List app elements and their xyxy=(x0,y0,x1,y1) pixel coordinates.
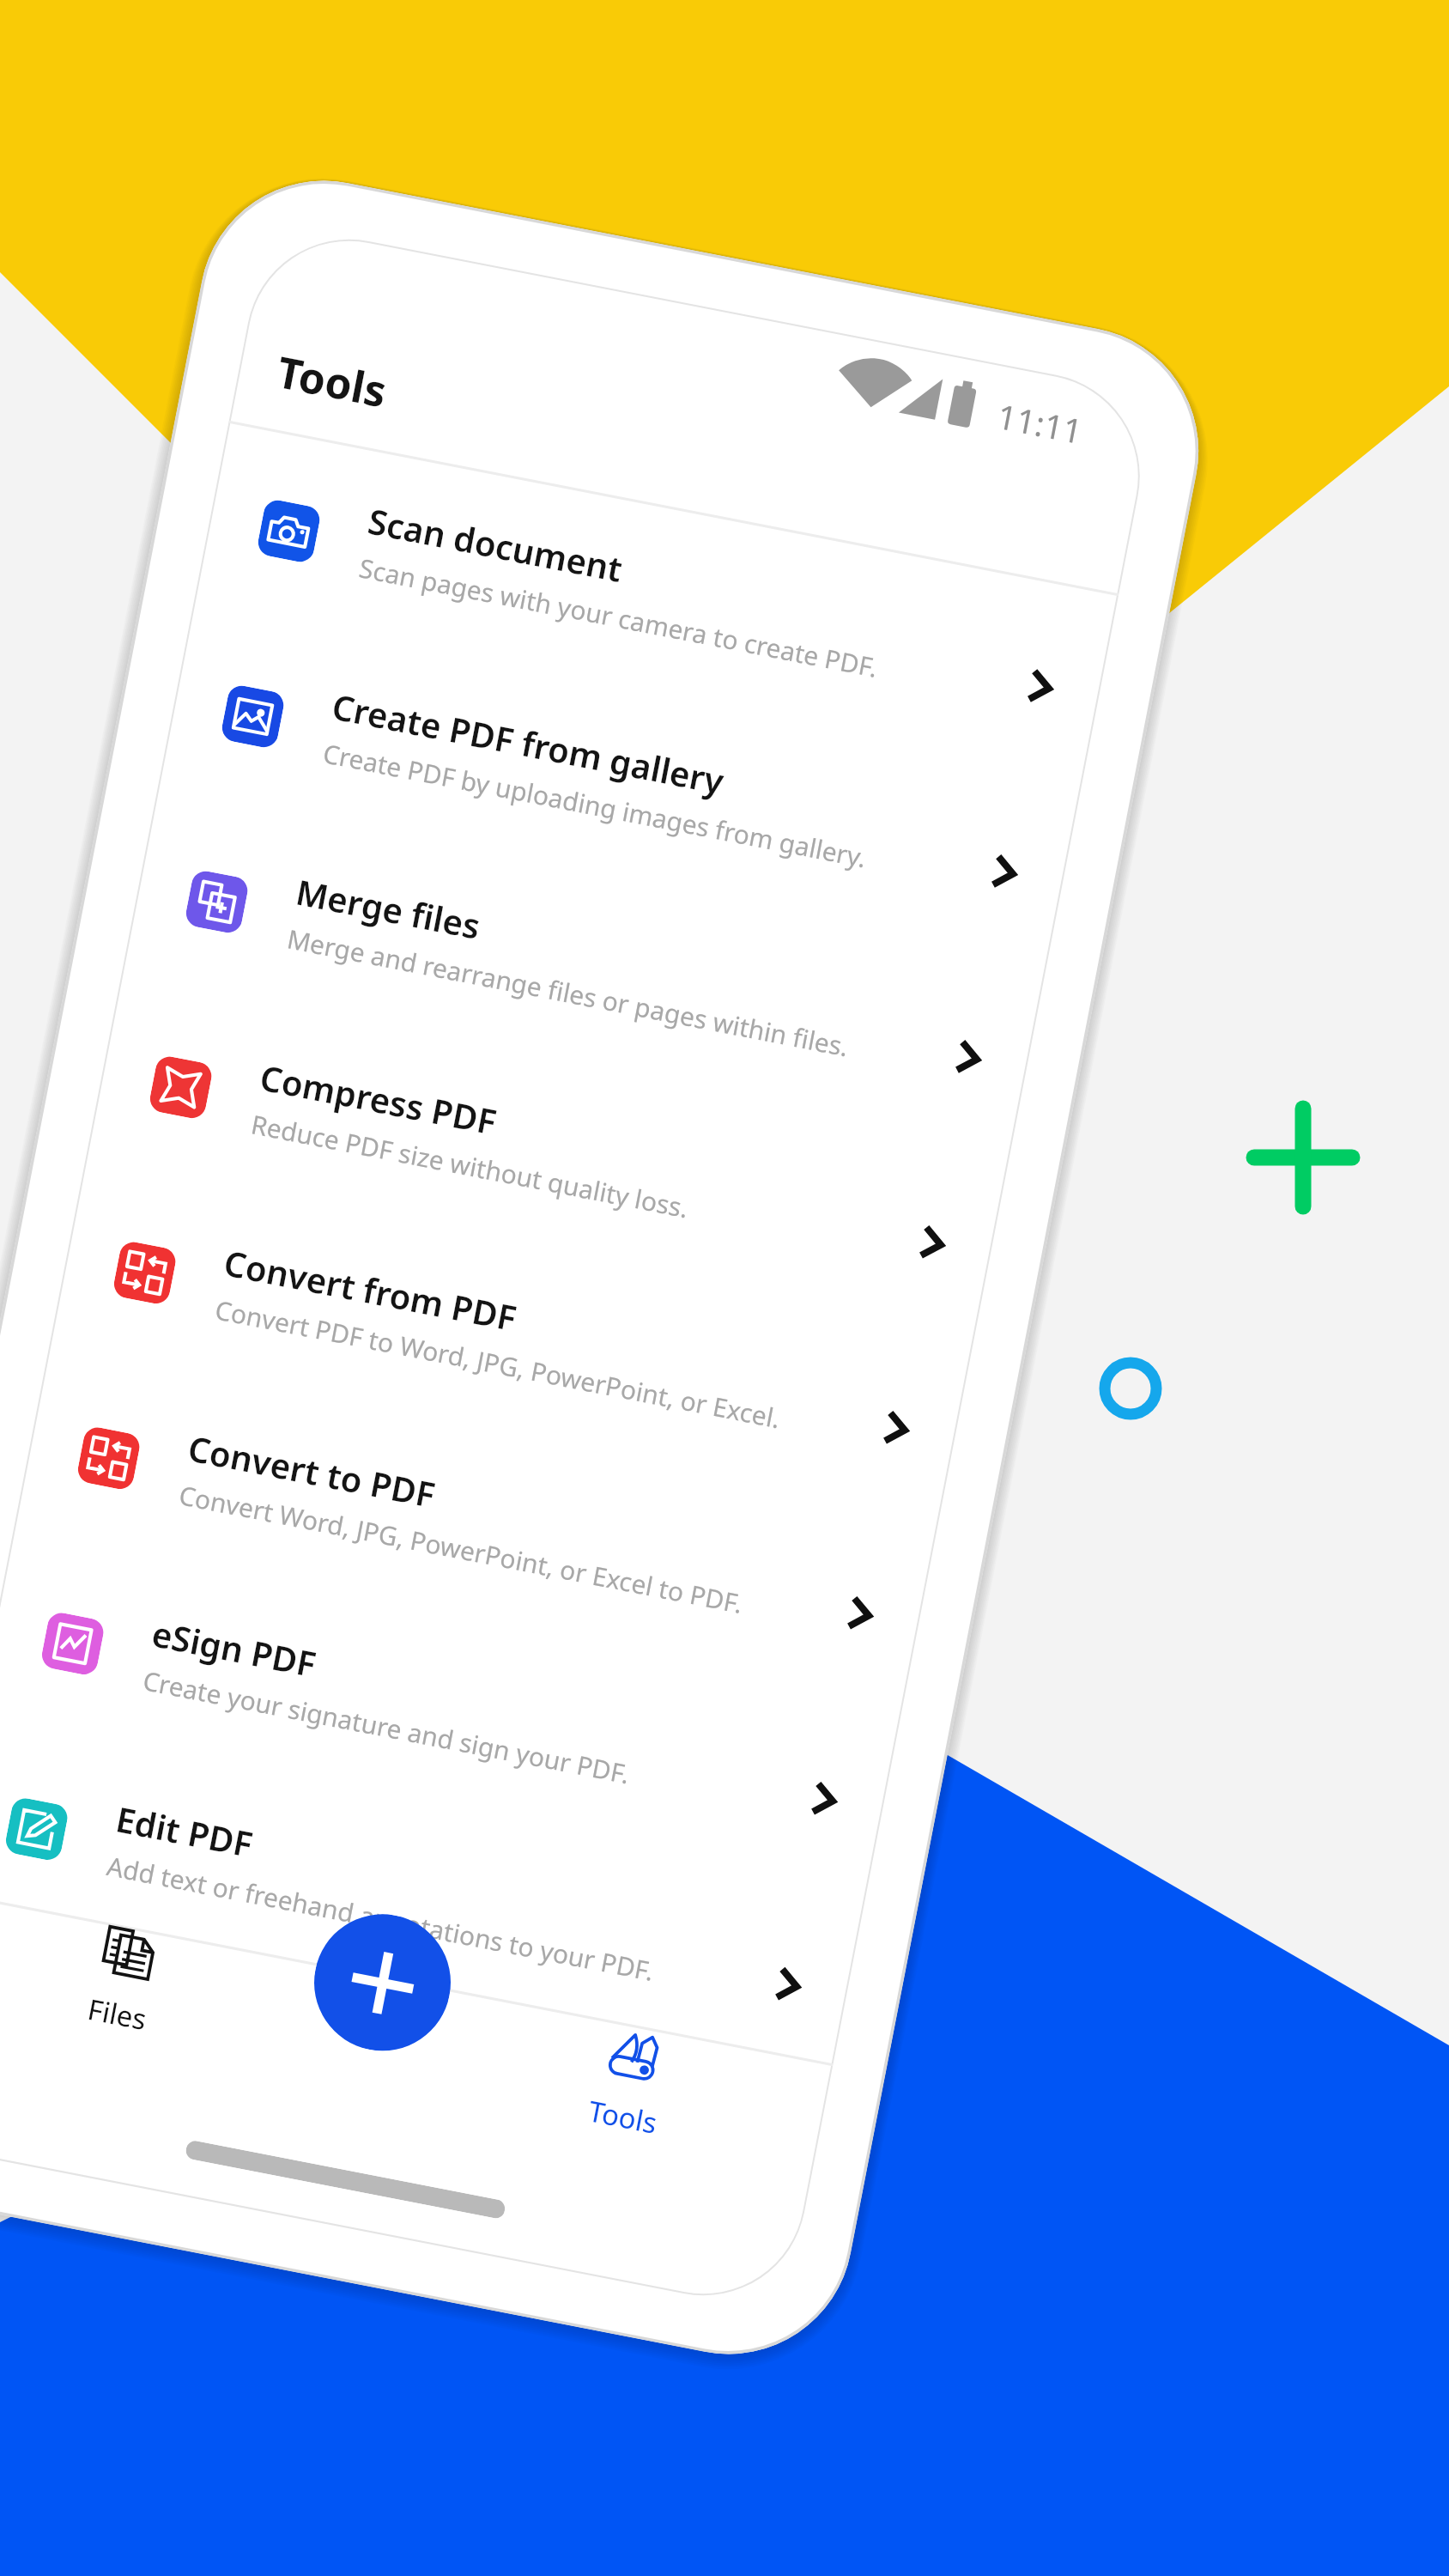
staticText: Create your signature and sign your PDF. xyxy=(140,1662,633,1792)
button[interactable]: Create xyxy=(302,1902,462,2063)
button[interactable]: Merge files xyxy=(120,794,1046,1153)
staticText: Merge and rearrange files or pages withi… xyxy=(284,921,852,1064)
button[interactable]: Scan document xyxy=(193,423,1118,782)
staticText: Create PDF from gallery xyxy=(329,682,728,804)
staticText: Edit PDF xyxy=(112,1795,257,1867)
staticText: Tools xyxy=(273,342,392,420)
staticText: Merge files xyxy=(292,868,484,949)
staticText: Compress PDF xyxy=(256,1053,500,1144)
staticText: Convert to PDF xyxy=(184,1424,439,1517)
staticText: eSign PDF xyxy=(148,1609,321,1687)
button[interactable]: Convert to PDF xyxy=(12,1350,938,1709)
button[interactable]: Edit PDF xyxy=(0,1721,866,2080)
staticText: Add text or freehand annotations to your… xyxy=(104,1848,657,1989)
staticText: Scan pages with your camera to create PD… xyxy=(356,550,881,685)
button[interactable]: eSign PDF xyxy=(0,1536,902,1894)
staticText: Convert PDF to Word, JPG, PowerPoint, or… xyxy=(212,1292,783,1436)
staticText: Files xyxy=(85,1989,150,2039)
button[interactable]: Create PDF from gallery xyxy=(156,609,1082,967)
button[interactable]: Compress PDF xyxy=(84,979,1010,1338)
staticText: Convert from PDF xyxy=(220,1239,521,1341)
staticText: Tools xyxy=(585,2091,661,2142)
button[interactable]: Convert from PDF xyxy=(48,1165,974,1523)
staticText: Reduce PDF size without quality loss. xyxy=(248,1106,691,1226)
staticText: Scan document xyxy=(365,497,627,592)
button[interactable]: Files xyxy=(38,1908,211,2048)
staticText: 11:11 xyxy=(994,392,1087,454)
staticText: Create PDF by uploading images from gall… xyxy=(320,735,870,875)
button[interactable]: Tools xyxy=(543,2010,716,2150)
staticText: Convert Word, JPG, PowerPoint, or Excel … xyxy=(176,1477,747,1621)
